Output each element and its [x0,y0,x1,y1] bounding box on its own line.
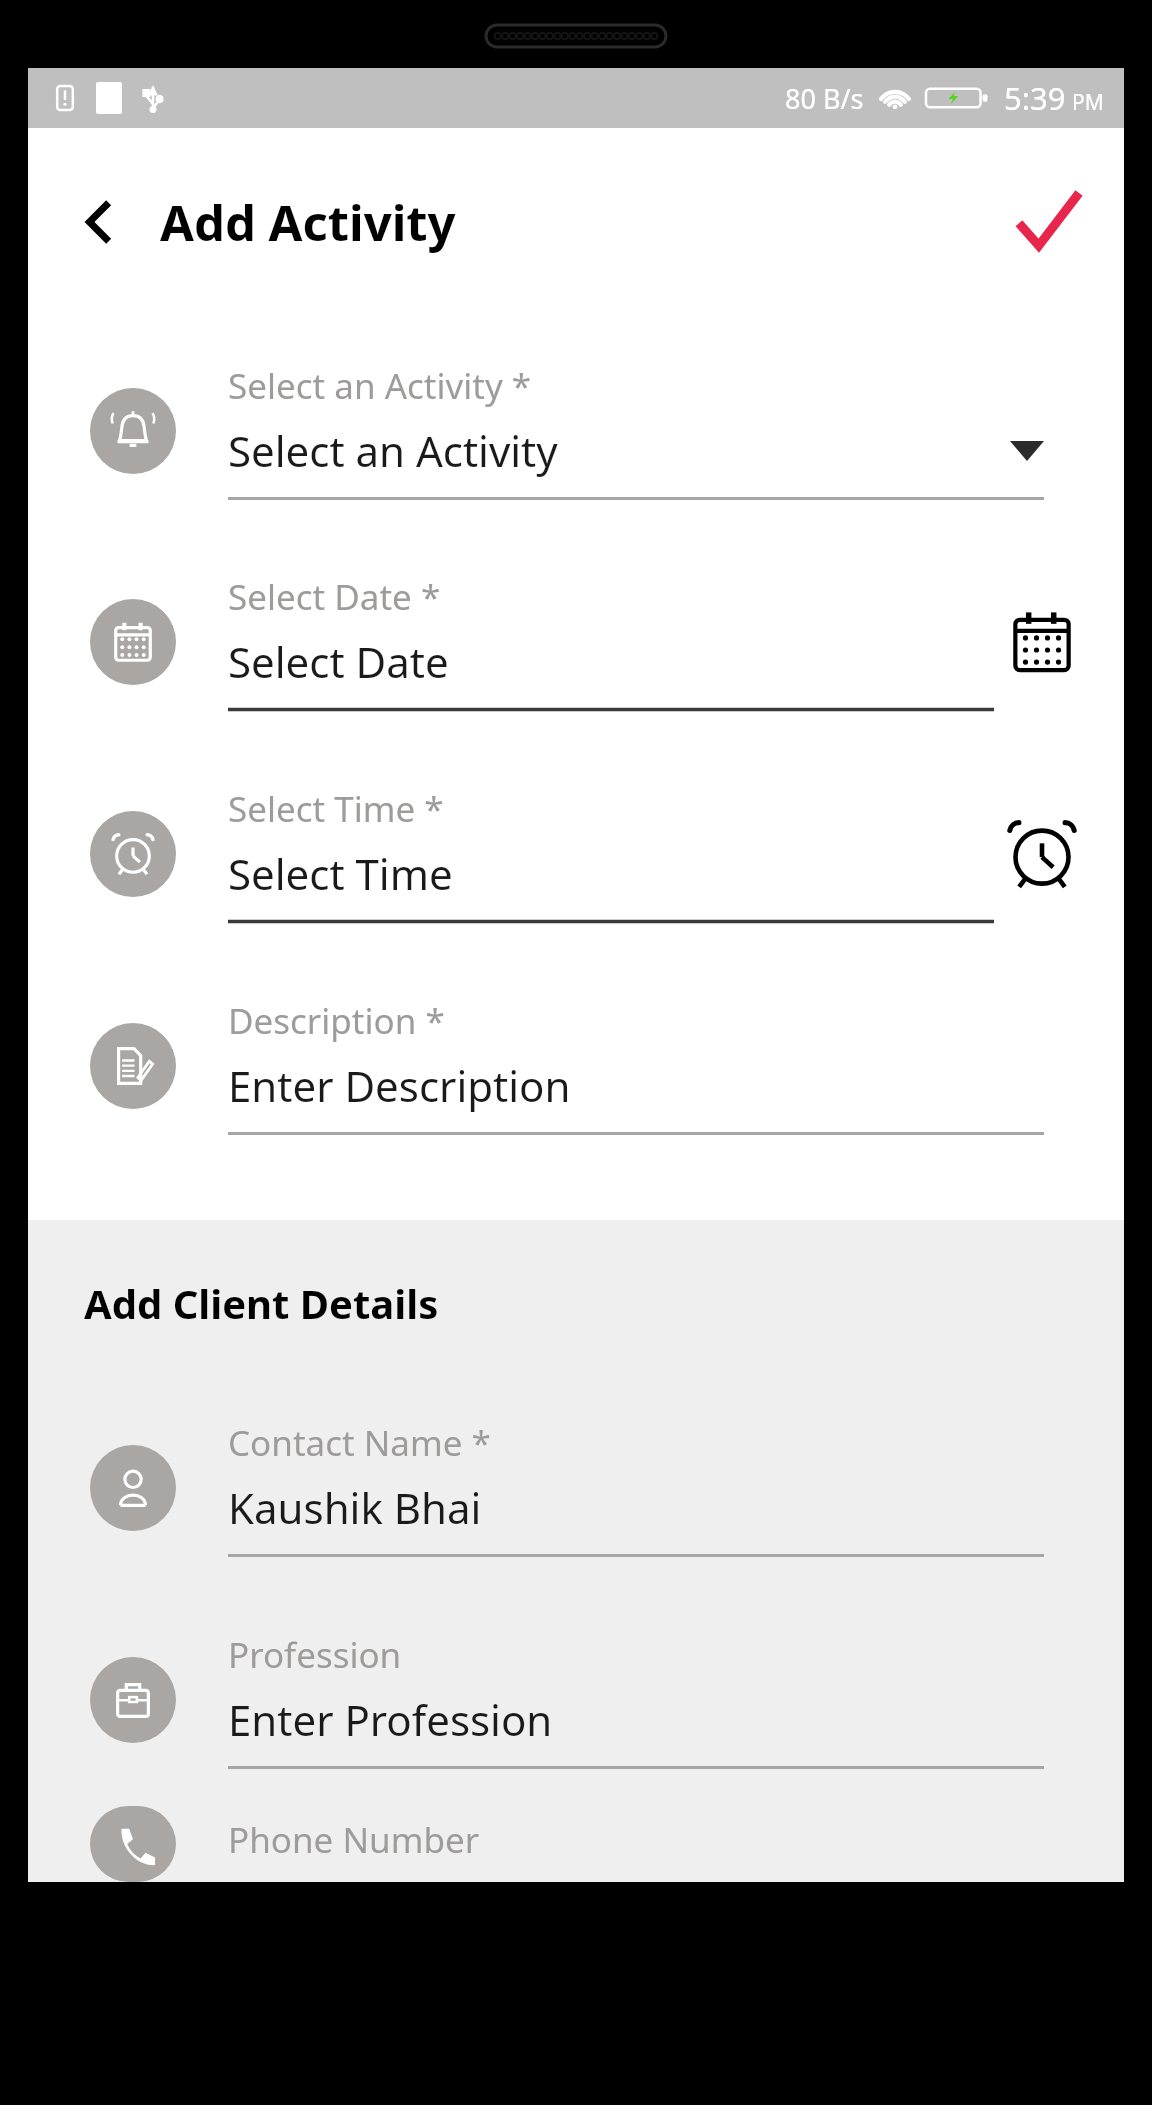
staticText: 5:39 [1004,77,1066,119]
staticText: Select an Activity * [228,362,532,410]
button[interactable]: Profession [28,1594,1124,1806]
button[interactable]: Description * [28,960,1124,1172]
staticText: Enter Description [228,1057,571,1114]
staticText: Select an Activity [228,422,558,479]
staticText: Select Date [228,633,449,690]
button[interactable]: Phone Number [28,1806,1124,1882]
staticText: PM [1072,88,1104,117]
staticText: Contact Name * [228,1419,491,1467]
staticText: 80 B/s [785,80,864,117]
staticText: Phone Number [228,1816,480,1864]
button[interactable]: Pick date [994,594,1090,690]
staticText: Enter Profession [228,1691,553,1748]
staticText: Select Time * [228,785,444,833]
button[interactable]: Pick time [994,806,1090,902]
button[interactable]: Contact Name * [28,1382,1124,1594]
staticText: Description * [228,997,445,1045]
button[interactable]: Select an Activity * [28,326,1124,536]
staticText: Select Date * [228,573,441,621]
button[interactable]: Save [1006,180,1090,264]
button[interactable]: Back [64,185,138,259]
button[interactable]: Select Time * [28,748,1124,960]
staticText: Select Time [228,845,453,902]
staticText: Add Activity [160,189,456,256]
button[interactable]: Select Date * [28,536,1124,748]
staticText: Kaushik Bhai [228,1479,482,1536]
staticText: Add Client Details [84,1276,439,1330]
staticText: Profession [228,1631,402,1679]
